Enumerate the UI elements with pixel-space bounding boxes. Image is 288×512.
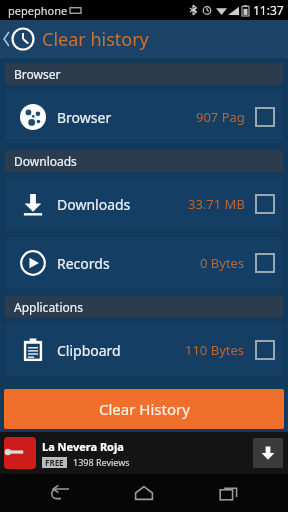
- button[interactable]: Downloads: [5, 178, 283, 230]
- staticText: 907 Pag: [196, 108, 245, 126]
- staticText: Clear history: [42, 27, 149, 52]
- staticText: La Nevera Roja: [42, 439, 124, 454]
- button[interactable]: Select Records: [255, 253, 275, 273]
- button[interactable]: Recents: [204, 474, 254, 512]
- staticText: Browser: [14, 66, 61, 82]
- staticText: Applications: [14, 299, 83, 315]
- staticText: 1398 Reviews: [73, 456, 130, 468]
- button[interactable]: Browser: [5, 91, 283, 143]
- button[interactable]: La Nevera Roja: [0, 432, 288, 474]
- staticText: FREE: [45, 457, 64, 468]
- button[interactable]: Select Downloads: [255, 194, 275, 214]
- button[interactable]: Home: [119, 474, 169, 512]
- button[interactable]: Records: [5, 237, 283, 289]
- staticText: Downloads: [57, 195, 131, 214]
- button[interactable]: Clear History: [4, 389, 284, 429]
- staticText: 11:37: [253, 2, 284, 18]
- staticText: Clear History: [99, 399, 190, 419]
- button[interactable]: Install: [253, 438, 283, 468]
- staticText: Records: [57, 254, 110, 273]
- staticText: 33.71 MB: [188, 195, 245, 213]
- button[interactable]: Back: [35, 474, 85, 512]
- button[interactable]: Clipboard: [5, 324, 283, 376]
- staticText: Downloads: [14, 153, 77, 169]
- button[interactable]: Select Clipboard: [255, 340, 275, 360]
- staticText: 110 Bytes: [185, 341, 245, 359]
- staticText: Browser: [57, 108, 112, 127]
- button[interactable]: Back: [0, 20, 288, 58]
- staticText: 0 Bytes: [200, 254, 245, 272]
- button[interactable]: Select Browser: [255, 107, 275, 127]
- staticText: pepephone: [8, 3, 68, 18]
- staticText: Clipboard: [57, 341, 121, 360]
